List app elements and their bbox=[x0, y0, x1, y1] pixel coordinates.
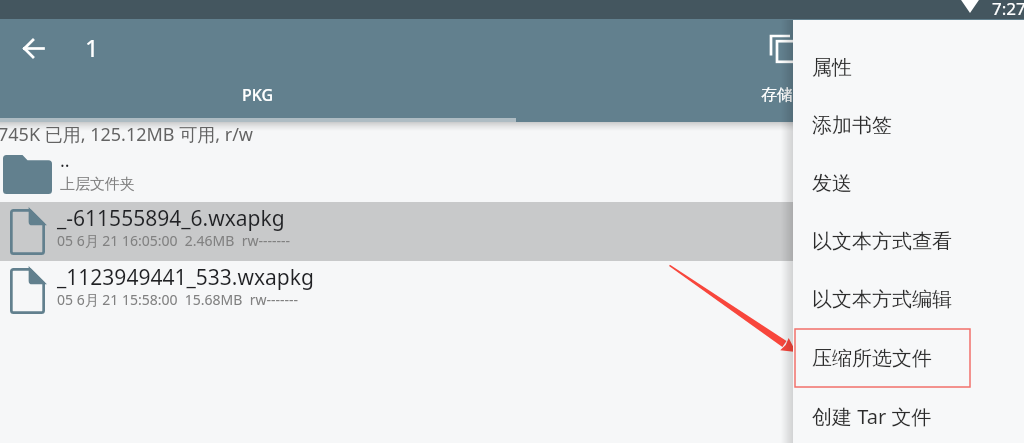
staticText: 压缩所选文件 bbox=[812, 346, 932, 371]
staticText: 以文本方式编辑 bbox=[812, 287, 952, 312]
staticText: 745K 已用, 125.12MB 可用, r/w bbox=[0, 122, 254, 147]
button[interactable]: _-611555894_6.wxapkg bbox=[0, 202, 1024, 261]
staticText: 上层文件夹 bbox=[60, 175, 135, 194]
button[interactable]: 属性 bbox=[793, 38, 1024, 96]
button[interactable]: .. bbox=[0, 147, 1024, 202]
button[interactable]: PKG bbox=[0, 77, 516, 113]
staticText: 05 6月 21 16:05:00 2.46MB rw------- bbox=[57, 231, 290, 250]
button[interactable]: _1123949441_533.wxapkg bbox=[0, 261, 1024, 320]
staticText: _-611555894_6.wxapkg bbox=[57, 204, 285, 233]
staticText: 属性 bbox=[812, 55, 852, 80]
button[interactable]: 发送 bbox=[793, 154, 1024, 212]
button[interactable]: 存储 bbox=[516, 77, 1024, 113]
button[interactable]: Back bbox=[9, 24, 57, 72]
button[interactable]: 以文本方式查看 bbox=[793, 212, 1024, 270]
staticText: 存储 bbox=[761, 85, 793, 105]
staticText: 1 bbox=[85, 31, 99, 64]
staticText: PKG bbox=[242, 84, 274, 106]
staticText: .. bbox=[60, 148, 70, 173]
staticText: 05 6月 21 15:58:00 15.68MB rw------- bbox=[57, 290, 298, 309]
staticText: 7:27 bbox=[992, 0, 1024, 16]
staticText: 创建 Tar 文件 bbox=[812, 403, 932, 430]
button[interactable]: 压缩所选文件 bbox=[793, 329, 1024, 387]
staticText: 发送 bbox=[812, 171, 852, 196]
button[interactable]: 添加书签 bbox=[793, 96, 1024, 154]
staticText: _1123949441_533.wxapkg bbox=[57, 263, 314, 292]
button[interactable]: 创建 Tar 文件 bbox=[793, 387, 1024, 443]
button[interactable]: 以文本方式编辑 bbox=[793, 270, 1024, 328]
button[interactable]: Copy bbox=[762, 28, 806, 72]
staticText: 添加书签 bbox=[812, 113, 892, 138]
staticText: 以文本方式查看 bbox=[812, 229, 952, 254]
